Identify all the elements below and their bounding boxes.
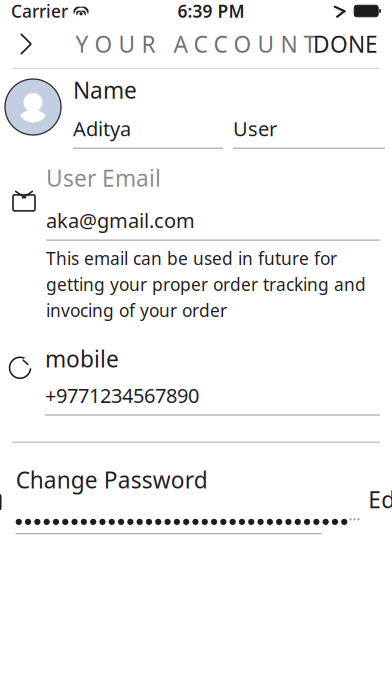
staticText: aka@gmail.com (46, 207, 195, 234)
staticText: Aditya (73, 115, 131, 142)
button[interactable]: DONE (303, 22, 388, 66)
staticText: This email can be used in future for get… (46, 247, 366, 322)
staticText: Y O U R A C C O U N T (75, 29, 316, 59)
staticText: mobile (45, 344, 119, 374)
staticText: User Email (46, 163, 161, 193)
button[interactable]: Edit (360, 476, 392, 522)
staticText: 6:39 PM (178, 0, 245, 22)
button[interactable]: Back (4, 22, 48, 66)
staticText: DONE (313, 29, 378, 59)
staticText: Carrier (11, 0, 68, 22)
staticText: Name (73, 75, 137, 105)
staticText: Edit (368, 484, 392, 514)
staticText: Change Password (16, 465, 208, 495)
staticText: ... (348, 504, 360, 525)
staticText: +9771234567890 (45, 382, 199, 408)
staticText: User (233, 115, 277, 142)
